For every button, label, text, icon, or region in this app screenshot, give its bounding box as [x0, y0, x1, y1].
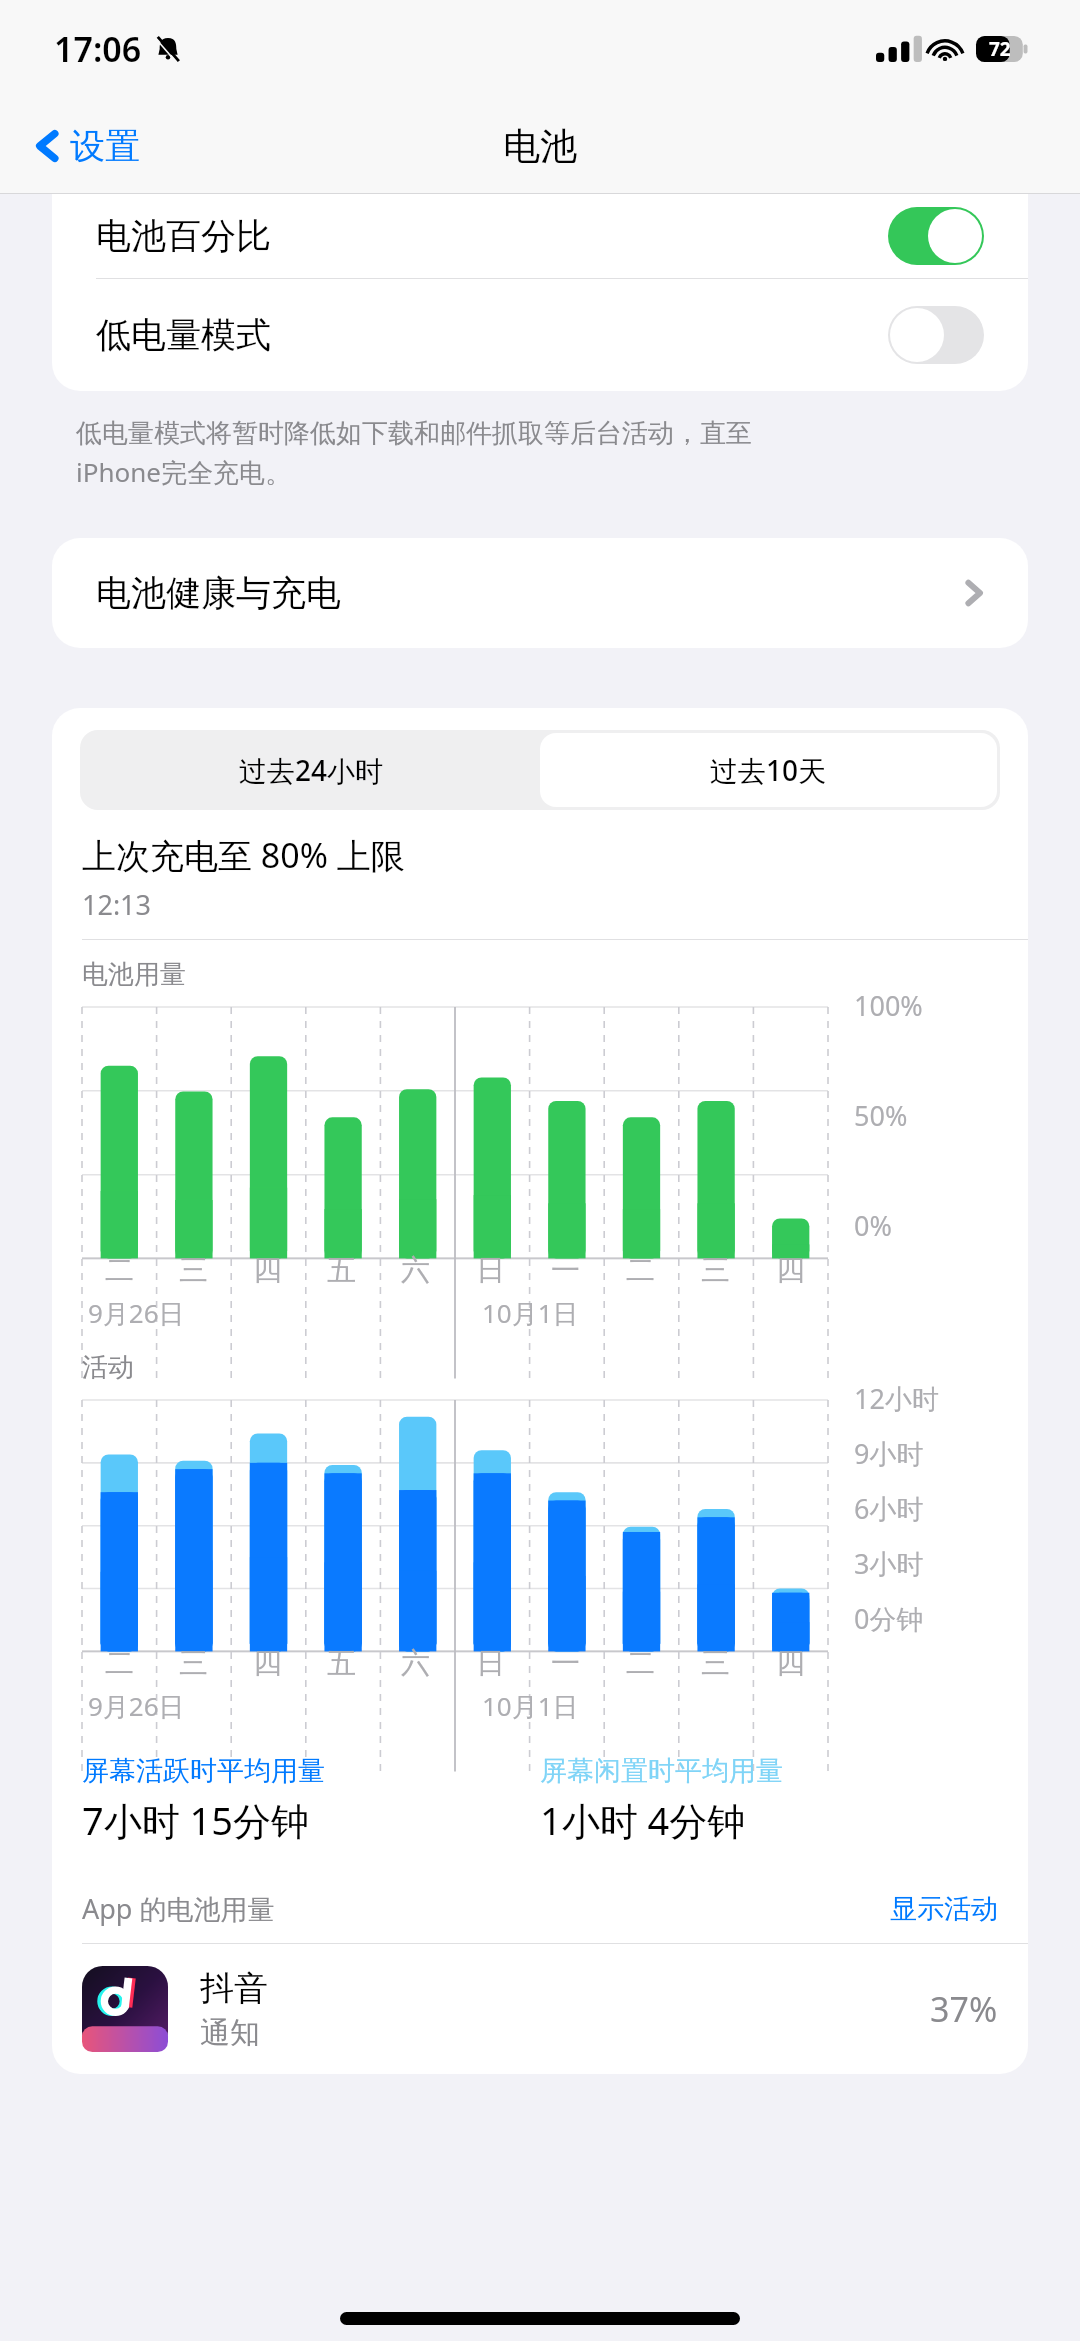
staticText: 二: [626, 1252, 655, 1289]
staticText: 二: [626, 1645, 655, 1682]
staticText: 37%: [930, 1986, 998, 2032]
staticText: 9月26日: [88, 1688, 185, 1724]
staticText: 电池百分比: [96, 214, 271, 258]
staticText: 四: [253, 1645, 282, 1682]
staticText: 二: [105, 1645, 134, 1682]
staticText: 0%: [854, 1207, 892, 1244]
staticText: 上次充电至 80% 上限: [82, 832, 405, 878]
staticText: 低电量模式将暂时降低如下载和邮件抓取等后台活动，直至 iPhone完全充电。: [76, 417, 752, 490]
staticText: 9小时: [854, 1435, 924, 1472]
staticText: 低电量模式: [96, 313, 271, 357]
button[interactable]: 低电量模式: [52, 279, 1028, 391]
staticText: 12小时: [854, 1380, 939, 1417]
staticText: 三: [179, 1252, 208, 1289]
staticText: 6小时: [854, 1490, 924, 1527]
button[interactable]: 抖音: [52, 1944, 1028, 2074]
staticText: 六: [401, 1645, 430, 1682]
staticText: 屏幕活跃时平均用量: [82, 1754, 325, 1788]
button[interactable]: 过去10天: [540, 733, 997, 807]
staticText: 电池: [503, 123, 577, 170]
button[interactable]: 电池健康与充电: [52, 538, 1028, 648]
staticText: 四: [776, 1645, 805, 1682]
staticText: 7小时 15分钟: [82, 1794, 310, 1846]
staticText: 9月26日: [88, 1295, 185, 1331]
staticText: 活动: [82, 1351, 134, 1384]
staticText: 三: [701, 1645, 730, 1682]
staticText: 二: [105, 1252, 134, 1289]
staticText: 17:06: [54, 26, 142, 72]
button[interactable]: 过去24小时: [83, 733, 540, 807]
staticText: 10月1日: [482, 1295, 579, 1331]
staticText: 日: [476, 1252, 505, 1289]
staticText: 72: [989, 36, 1011, 62]
staticText: 电池用量: [82, 958, 186, 991]
staticText: 一: [551, 1645, 580, 1682]
staticText: 抖音: [200, 1967, 268, 2010]
staticText: 三: [701, 1252, 730, 1289]
staticText: 四: [776, 1252, 805, 1289]
staticText: 0分钟: [854, 1600, 924, 1637]
staticText: 12:13: [82, 886, 152, 923]
staticText: 三: [179, 1645, 208, 1682]
staticText: 10月1日: [482, 1688, 579, 1724]
staticText: 设置: [70, 124, 140, 168]
staticText: 3小时: [854, 1545, 924, 1582]
staticText: App 的电池用量: [82, 1890, 275, 1927]
staticText: 五: [327, 1252, 356, 1289]
staticText: 六: [401, 1252, 430, 1289]
staticText: 1小时 4分钟: [540, 1794, 746, 1846]
staticText: 显示活动: [890, 1892, 998, 1926]
staticText: 四: [253, 1252, 282, 1289]
staticText: 通知: [200, 2014, 260, 2052]
staticText: 五: [327, 1645, 356, 1682]
staticText: 一: [551, 1252, 580, 1289]
button[interactable]: 设置: [26, 116, 148, 176]
staticText: 屏幕闲置时平均用量: [540, 1754, 783, 1788]
staticText: 100%: [854, 987, 923, 1024]
staticText: 电池健康与充电: [96, 571, 341, 615]
staticText: 过去24小时: [239, 751, 384, 789]
button[interactable]: 显示活动: [890, 1892, 998, 1926]
staticText: 日: [476, 1645, 505, 1682]
staticText: 过去10天: [710, 751, 827, 789]
staticText: 50%: [854, 1097, 908, 1134]
button[interactable]: 电池百分比: [52, 194, 1028, 278]
